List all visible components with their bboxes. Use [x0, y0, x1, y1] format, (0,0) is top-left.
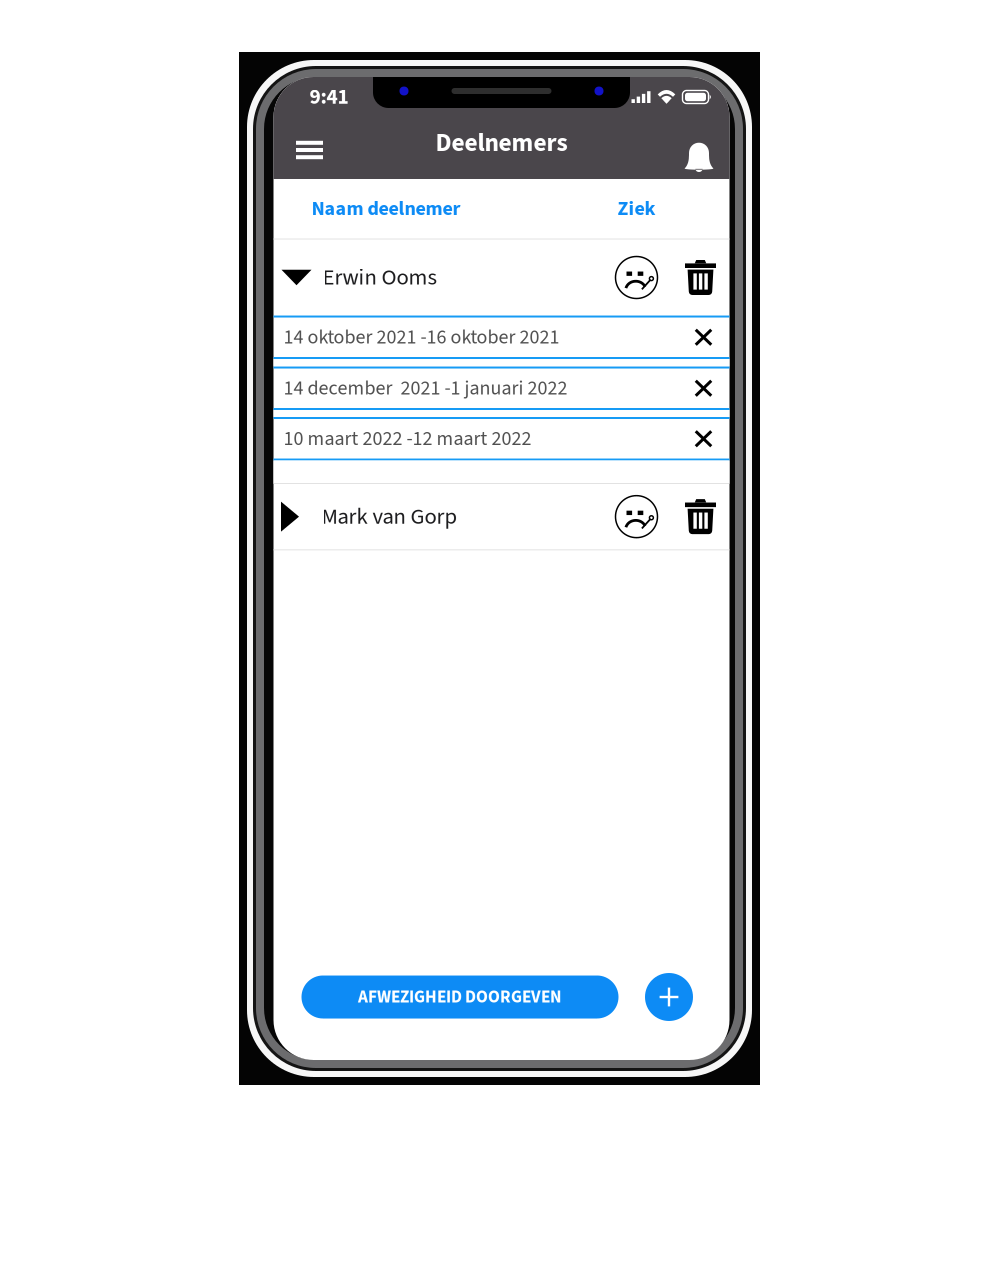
staticText: 9:41	[309, 82, 348, 112]
button[interactable]: Report sick	[595, 484, 677, 549]
staticText: AFWEZIGHEID DOORGEVEN	[358, 985, 562, 1009]
button[interactable]: Add participant	[644, 973, 693, 1021]
staticText: 10 maart 2022 -12 maart 2022	[283, 424, 531, 453]
staticText: Mark van Gorp	[321, 500, 457, 533]
button[interactable]: AFWEZIGHEID DOORGEVEN	[301, 975, 618, 1018]
staticText: 14 december 2021 -1 januari 2022	[283, 374, 567, 402]
button[interactable]: Report sick	[595, 239, 677, 315]
button[interactable]: Remove date range	[681, 317, 725, 357]
staticText: Erwin Ooms	[322, 261, 436, 294]
staticText: 14 oktober 2021 -16 oktober 2021	[283, 323, 559, 351]
button[interactable]: Delete	[677, 484, 723, 549]
button[interactable]: Notifications	[674, 135, 724, 179]
staticText: Naam deelnemer	[311, 194, 460, 223]
button[interactable]: Collapse Erwin Ooms	[277, 239, 315, 315]
button[interactable]: Remove date range	[681, 368, 725, 408]
button[interactable]: Expand Mark van Gorp	[277, 484, 302, 549]
button[interactable]: Menu	[284, 128, 334, 172]
staticText: Deelnemers	[435, 125, 567, 161]
staticText: Ziek	[617, 194, 655, 223]
button[interactable]: Remove date range	[681, 419, 725, 458]
button[interactable]: Delete	[677, 239, 723, 315]
